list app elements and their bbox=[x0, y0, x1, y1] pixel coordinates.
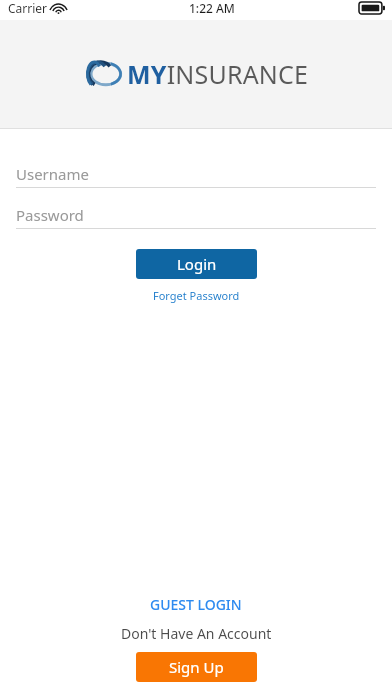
staticText: Password bbox=[16, 205, 84, 225]
button[interactable]: Forget Password bbox=[147, 286, 246, 305]
button[interactable]: Password bbox=[16, 202, 376, 229]
button[interactable]: GUEST LOGIN bbox=[142, 593, 250, 616]
staticText: GUEST LOGIN bbox=[150, 595, 242, 614]
staticText: Don't Have An Account bbox=[121, 624, 272, 643]
other: Battery bbox=[359, 2, 385, 14]
button[interactable]: Login bbox=[136, 249, 257, 279]
staticText: MYINSURANCE bbox=[127, 57, 309, 91]
button[interactable]: Sign Up bbox=[136, 652, 257, 682]
staticText: Username bbox=[16, 164, 89, 184]
staticText: Sign Up bbox=[169, 657, 224, 677]
staticText: Forget Password bbox=[153, 288, 240, 303]
button[interactable]: Username bbox=[16, 161, 376, 188]
staticText: 1:22 AM bbox=[189, 0, 235, 16]
staticText: Login bbox=[177, 254, 217, 274]
staticText: Carrier bbox=[8, 0, 48, 16]
